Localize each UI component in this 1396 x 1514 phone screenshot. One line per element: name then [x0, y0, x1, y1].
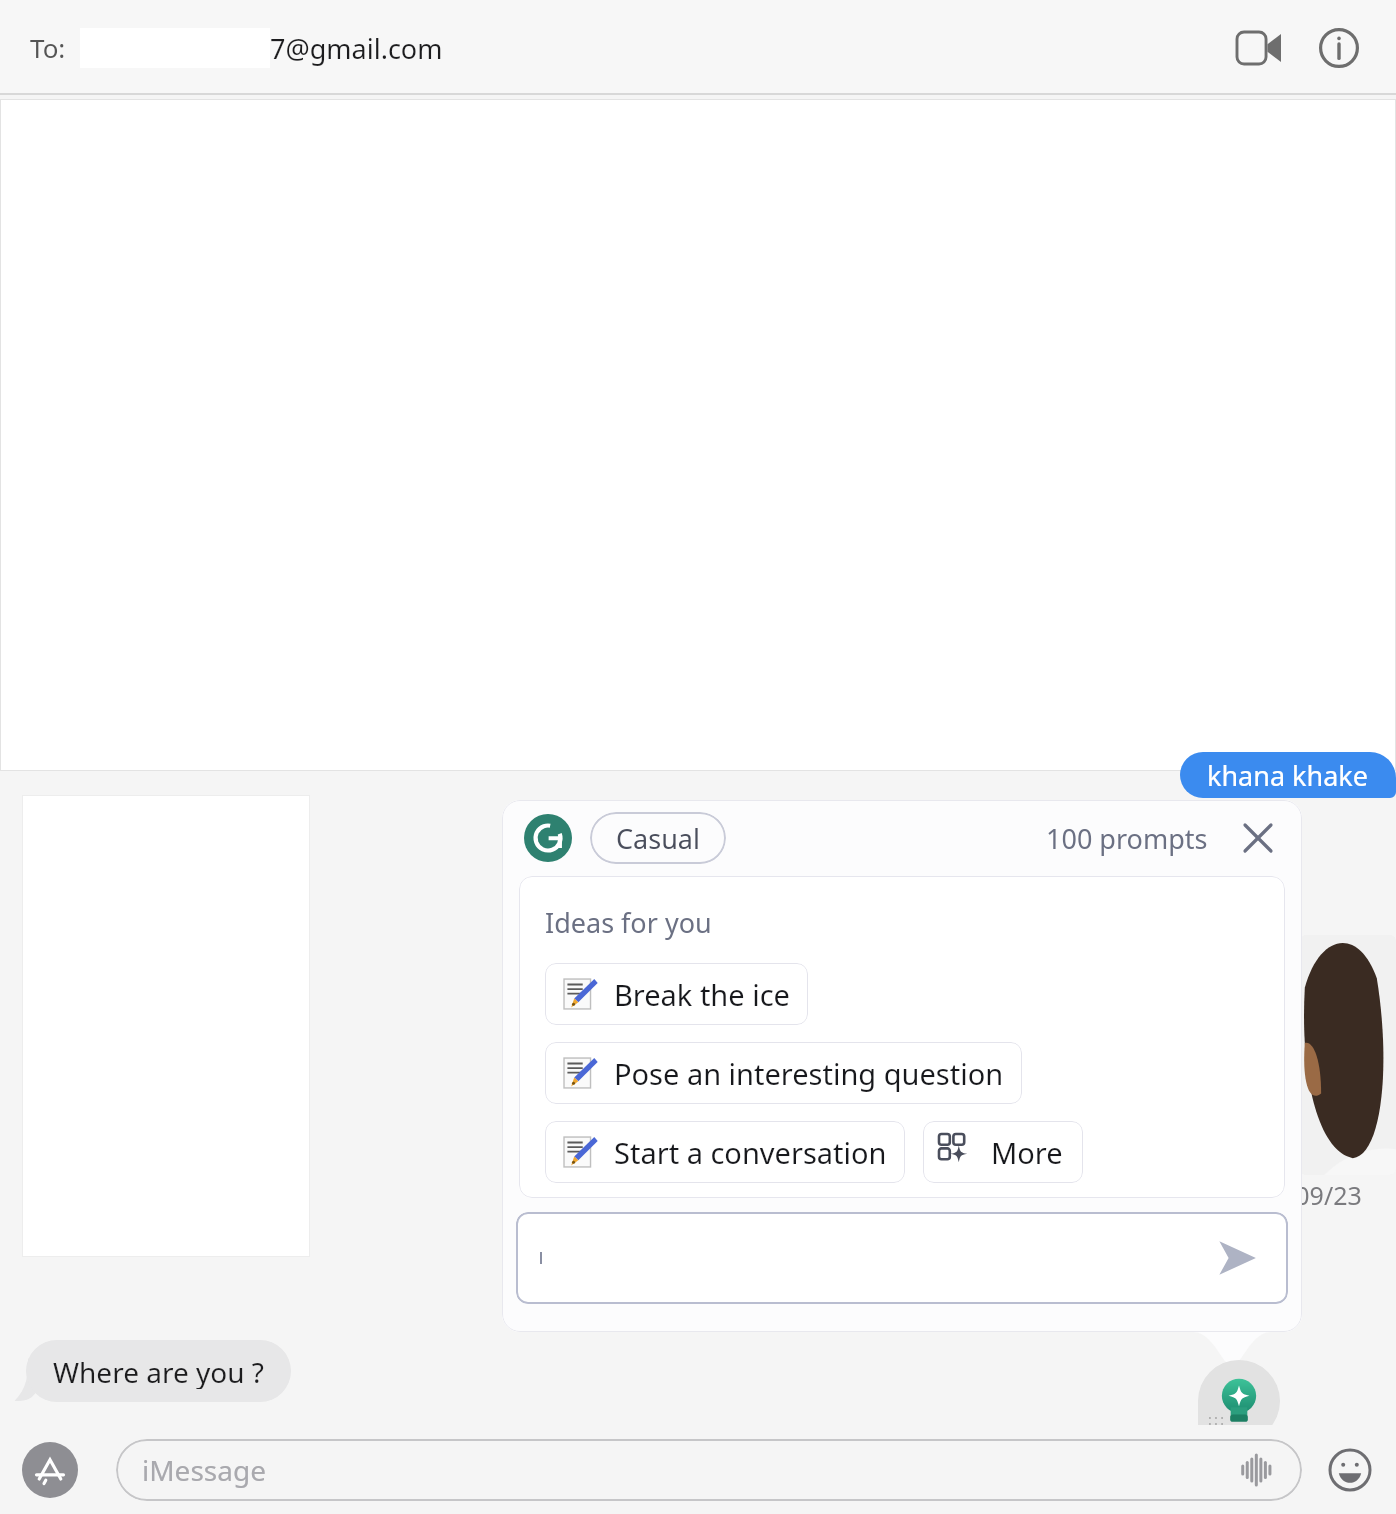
button[interactable]: Grammarly suggestions: [1198, 1360, 1280, 1442]
button[interactable]: iMessage: [116, 1439, 1302, 1501]
button[interactable]: App Store: [22, 1442, 78, 1498]
button[interactable]: Where are you ?: [26, 1340, 291, 1402]
staticText: More: [991, 1133, 1063, 1172]
button[interactable]: Send: [516, 1212, 1288, 1304]
button[interactable]: Emoji: [1324, 1444, 1376, 1496]
button[interactable]: khana khake: [1180, 752, 1396, 798]
staticText: Ideas for you: [545, 904, 712, 941]
button[interactable]: Grammarly: [524, 814, 572, 862]
button[interactable]: More: [923, 1121, 1083, 1183]
button[interactable]: FaceTime video call: [1228, 17, 1290, 79]
button[interactable]: Close: [1236, 816, 1280, 860]
staticText: To:: [30, 30, 66, 65]
button[interactable]: Pose an interesting question: [545, 1042, 1022, 1104]
button[interactable]: Start a conversation: [545, 1121, 905, 1183]
staticText: /09/23: [1286, 1178, 1362, 1212]
staticText: Break the ice: [614, 975, 790, 1014]
staticText: 7@gmail.com: [270, 30, 443, 67]
staticText: Casual: [616, 820, 700, 857]
staticText: Where are you ?: [53, 1353, 264, 1389]
button[interactable]: Details: [1308, 17, 1370, 79]
staticText: Start a conversation: [614, 1133, 887, 1172]
button[interactable]: Record audio message: [1234, 1447, 1280, 1493]
button[interactable]: Send: [1212, 1233, 1262, 1283]
staticText: Pose an interesting question: [614, 1054, 1004, 1093]
staticText: iMessage: [142, 1451, 266, 1489]
staticText: khana khake: [1207, 757, 1369, 794]
staticText: 100 prompts: [1046, 820, 1208, 857]
button[interactable]: Casual: [590, 812, 726, 864]
button[interactable]: Break the ice: [545, 963, 808, 1025]
